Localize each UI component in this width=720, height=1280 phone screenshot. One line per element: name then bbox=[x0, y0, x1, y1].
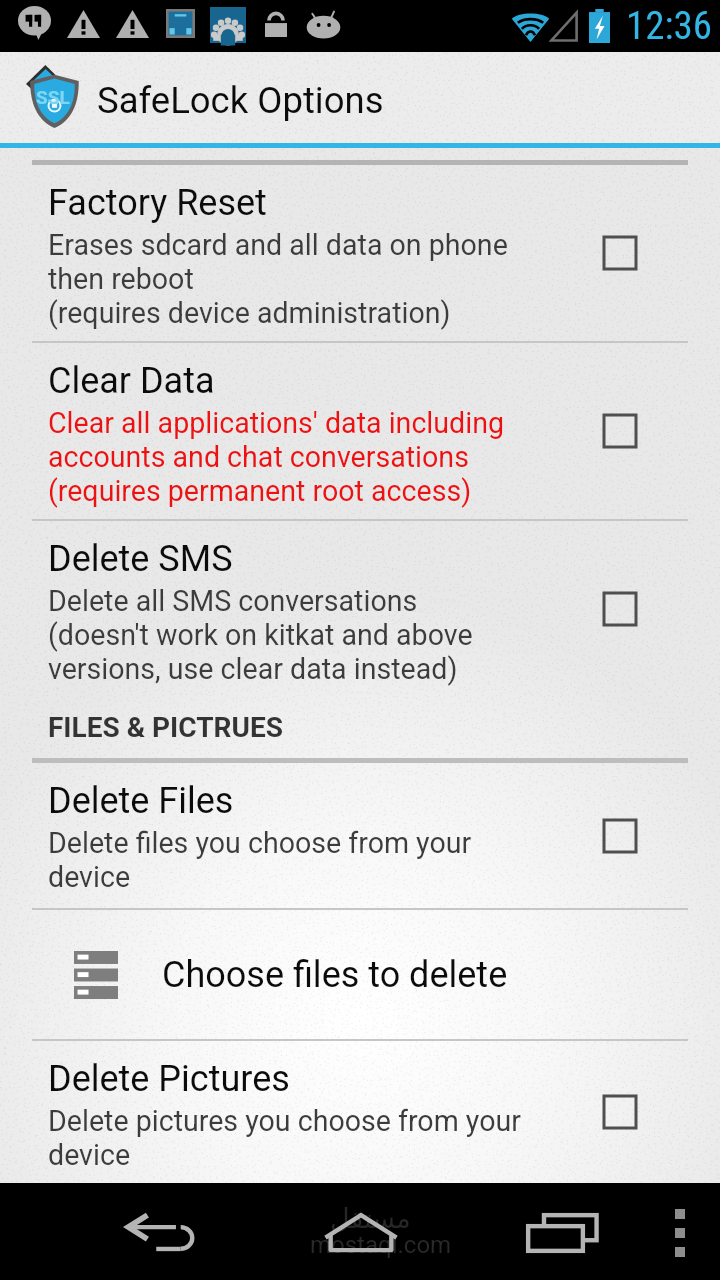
staticText: Delete pictures you choose from your bbox=[48, 1104, 521, 1138]
staticText: Delete SMS bbox=[48, 538, 233, 580]
staticText: Erases sdcard and all data on phone bbox=[48, 228, 508, 262]
staticText: Delete files you choose from your bbox=[48, 826, 472, 860]
button[interactable]: Delete Files bbox=[0, 763, 720, 908]
staticText: Clear all applications' data including bbox=[48, 406, 504, 440]
staticText: مستقل bbox=[330, 1203, 411, 1234]
staticText: Delete Pictures bbox=[48, 1058, 290, 1100]
staticText: (requires permanent root access) bbox=[48, 474, 472, 508]
staticText: Choose files to delete bbox=[162, 954, 508, 996]
staticText: FILES & PICTRUES bbox=[48, 711, 283, 744]
staticText: SafeLock Options bbox=[97, 79, 384, 122]
staticText: (requires device administration) bbox=[48, 296, 451, 330]
staticText: Clear Data bbox=[48, 360, 215, 402]
staticText: mostaql.com bbox=[310, 1231, 452, 1259]
button[interactable]: Recents bbox=[526, 1214, 598, 1252]
button[interactable]: Choose files to delete bbox=[0, 910, 720, 1039]
button[interactable]: Home bbox=[324, 1214, 398, 1252]
button[interactable]: Delete SMS bbox=[0, 521, 720, 697]
staticText: versions, use clear data instead) bbox=[48, 652, 458, 686]
staticText: accounts and chat conversations bbox=[48, 440, 469, 474]
staticText: Delete Files bbox=[48, 780, 234, 822]
staticText: Delete all SMS conversations bbox=[48, 584, 418, 618]
staticText: device bbox=[48, 860, 131, 894]
staticText: 12:36 bbox=[626, 3, 713, 49]
button[interactable]: More options bbox=[650, 1203, 710, 1263]
staticText: device bbox=[48, 1138, 131, 1172]
button[interactable]: Factory Reset bbox=[0, 165, 720, 341]
staticText: then reboot bbox=[48, 262, 194, 296]
staticText: SSL bbox=[36, 86, 70, 108]
button[interactable]: Back bbox=[127, 1214, 195, 1252]
button[interactable]: Delete Pictures bbox=[0, 1041, 720, 1183]
button[interactable]: Clear Data bbox=[0, 343, 720, 519]
staticText: (doesn't work on kitkat and above bbox=[48, 618, 473, 652]
staticText: Factory Reset bbox=[48, 182, 267, 224]
